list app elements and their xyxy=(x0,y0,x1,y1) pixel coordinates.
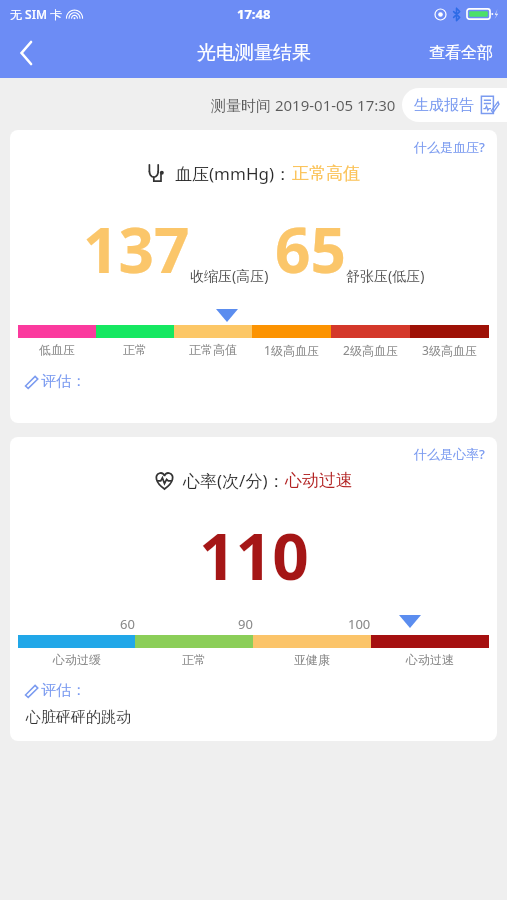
staticText: 60 xyxy=(120,615,135,633)
staticText: 什么是心率? xyxy=(414,445,485,463)
staticText: 什么是血压? xyxy=(414,138,485,156)
staticText: 心动过速 xyxy=(285,470,353,491)
staticText: 137 xyxy=(83,207,190,291)
staticText: 心率(次/分)： xyxy=(183,469,285,492)
staticText: 评估： xyxy=(41,372,86,391)
staticText: 110 xyxy=(199,512,309,599)
staticText: 低血压 xyxy=(39,342,75,357)
staticText: 查看全部 xyxy=(429,43,493,63)
staticText: 心动过缓 xyxy=(53,652,101,667)
staticText: 光电测量结果 xyxy=(197,41,311,65)
button[interactable]: 什么是心率? xyxy=(414,437,497,463)
staticText: 3级高血压 xyxy=(422,342,477,358)
staticText: 17:48 xyxy=(237,5,271,23)
staticText: 心动过速 xyxy=(406,652,454,667)
staticText: 亚健康 xyxy=(294,652,330,667)
staticText: 生成报告 xyxy=(414,96,474,115)
button[interactable]: 返回 xyxy=(0,28,52,78)
staticText: 心脏砰砰的跳动 xyxy=(26,708,131,727)
staticText: 收缩压(高压) xyxy=(190,266,269,285)
staticText: 血压(mmHg)： xyxy=(175,162,292,185)
button[interactable]: 生成报告 xyxy=(402,88,507,122)
staticText: 评估： xyxy=(41,681,86,700)
staticText: 90 xyxy=(238,615,253,633)
staticText: 正常 xyxy=(182,652,206,667)
staticText: 正常高值 xyxy=(189,342,237,357)
staticText: 正常高值 xyxy=(292,163,360,184)
staticText: 65 xyxy=(275,207,346,291)
staticText: 无 SIM 卡 xyxy=(10,6,63,22)
staticText: 1级高血压 xyxy=(264,342,319,358)
button[interactable]: 查看全部 xyxy=(415,33,507,73)
staticText: 100 xyxy=(348,615,371,633)
staticText: 正常 xyxy=(123,342,147,357)
staticText: 测量时间 2019-01-05 17:30 xyxy=(211,95,396,115)
button[interactable]: 什么是血压? xyxy=(414,130,497,156)
staticText: 舒张压(低压) xyxy=(346,266,425,285)
staticText: 2级高血压 xyxy=(343,342,398,358)
